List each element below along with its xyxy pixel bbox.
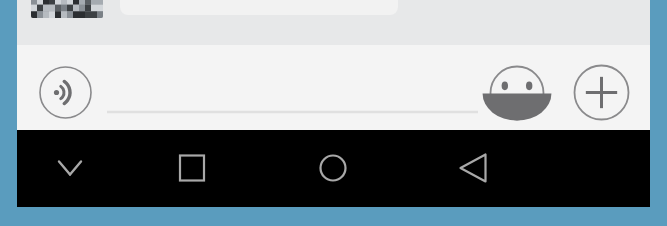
button[interactable]: Home <box>314 149 352 187</box>
button[interactable]: Add attachment <box>573 64 630 121</box>
button[interactable]: Insert emoji <box>489 65 545 121</box>
button[interactable]: Send audio message <box>39 66 92 119</box>
button[interactable]: Back <box>454 149 492 187</box>
button[interactable]: Recent apps <box>173 149 211 187</box>
button[interactable]: Hide keyboard <box>51 149 89 187</box>
button[interactable] <box>105 53 480 119</box>
